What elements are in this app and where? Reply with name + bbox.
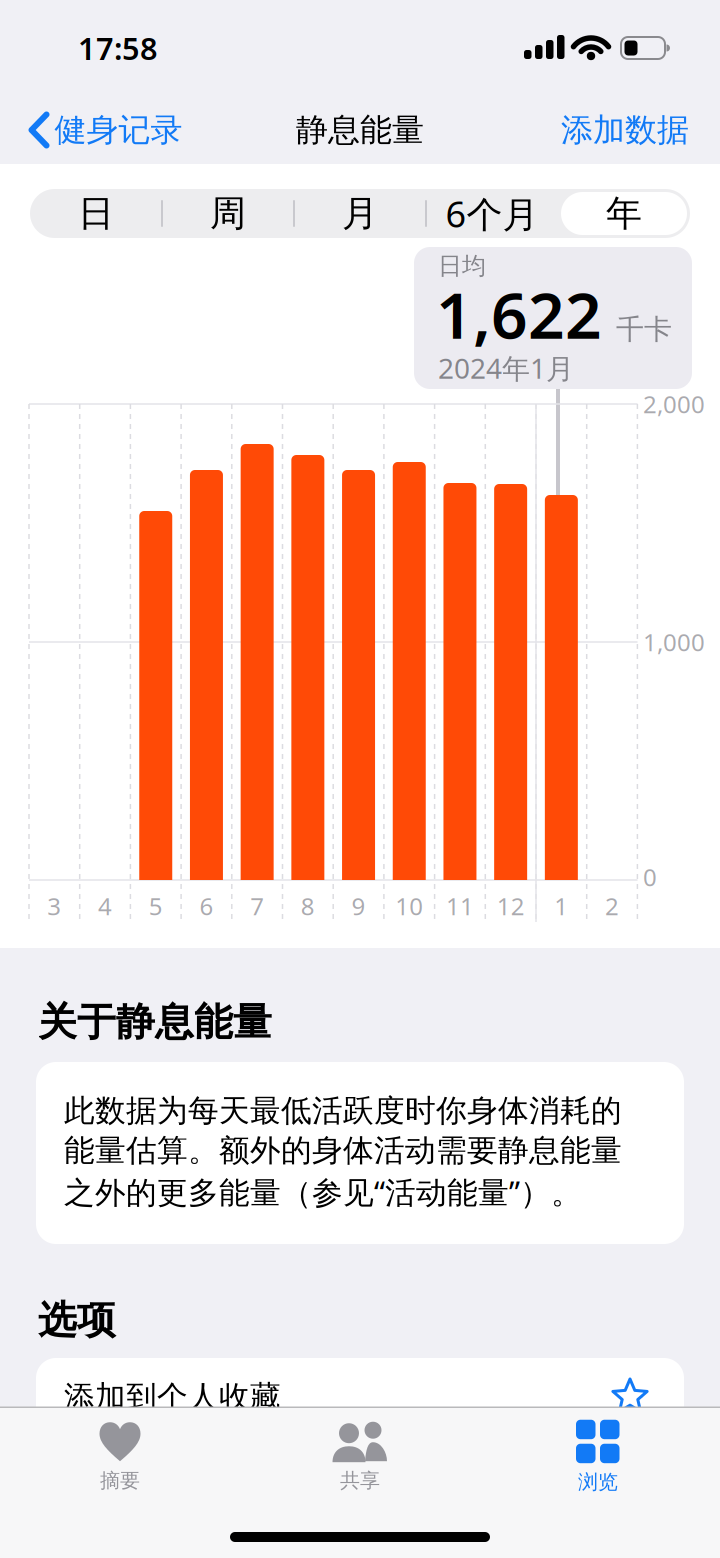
staticText: 周 [210, 191, 246, 236]
button[interactable]: 添加数据 [561, 110, 689, 150]
staticText: 6个月 [445, 190, 538, 237]
staticText: 添加数据 [561, 110, 689, 150]
button[interactable]: 摘要 [99, 1421, 141, 1493]
staticText: 能量估算。额外的身体活动需要静息能量 [64, 1132, 622, 1169]
staticText: 关于静息能量 [38, 998, 272, 1046]
button[interactable]: 年 [558, 189, 690, 238]
staticText: 月 [342, 191, 378, 236]
staticText: 日 [78, 191, 114, 236]
staticText: 此数据为每天最低活跃度时你身体消耗的 [64, 1092, 622, 1130]
staticText: 1,622 [436, 271, 602, 356]
staticText: 摘要 [100, 1468, 140, 1493]
staticText: 浏览 [578, 1470, 618, 1494]
staticText: 共享 [340, 1468, 380, 1493]
staticText: 10 [395, 890, 423, 922]
staticText: 年 [606, 191, 642, 236]
staticText: 2 [605, 890, 619, 922]
button[interactable]: 共享 [332, 1421, 388, 1493]
staticText: 健身记录 [54, 110, 182, 150]
button[interactable]: 周 [162, 189, 294, 238]
staticText: 4 [98, 890, 112, 922]
button[interactable]: 添加到个人收藏 [36, 1358, 684, 1454]
button[interactable]: 健身记录 [29, 110, 182, 150]
staticText: 9 [352, 890, 366, 922]
button[interactable]: 浏览 [576, 1420, 620, 1494]
staticText: 11 [446, 890, 474, 922]
staticText: 千卡 [616, 312, 672, 347]
staticText: 5 [149, 890, 163, 922]
staticText: 1 [554, 890, 568, 922]
staticText: 1,000 [643, 626, 705, 658]
staticText: 选项 [38, 1296, 116, 1344]
staticText: 静息能量 [296, 110, 424, 150]
staticText: 7 [250, 890, 264, 922]
staticText: 0 [643, 861, 657, 893]
staticText: 8 [301, 890, 315, 922]
button[interactable]: 月 [294, 189, 426, 238]
staticText: 2,000 [643, 388, 705, 420]
button[interactable]: 6个月 [426, 189, 558, 238]
button[interactable]: 日 [30, 189, 162, 238]
staticText: 12 [497, 890, 525, 922]
staticText: 17:58 [78, 28, 158, 68]
staticText: 日均 [438, 251, 486, 281]
staticText: 添加到个人收藏 [64, 1378, 281, 1416]
staticText: 之外的更多能量（参见“活动能量”）。 [64, 1171, 582, 1212]
staticText: 6 [199, 890, 213, 922]
staticText: 2024年1月 [438, 349, 574, 387]
staticText: 3 [47, 890, 61, 922]
